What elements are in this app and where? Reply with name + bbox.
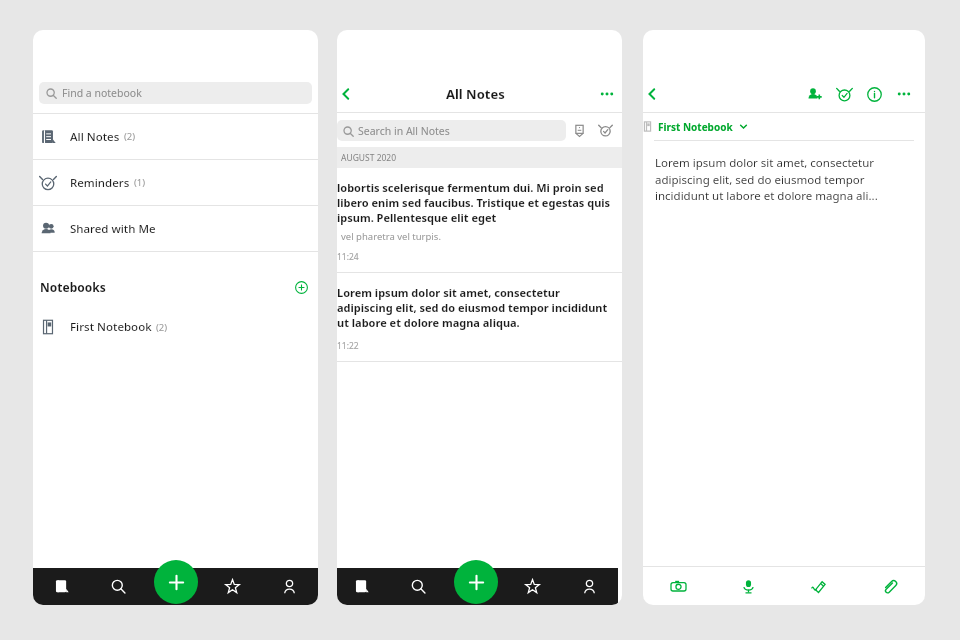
button[interactable]: Reminders [592,117,618,143]
button[interactable]: Find a notebook [39,82,312,104]
button[interactable]: More options [889,79,919,109]
staticText: AUGUST 2020 [341,152,397,164]
button[interactable]: Camera [643,567,713,605]
button[interactable]: New note [454,560,498,604]
staticText: Lorem ipsum dolor sit amet, consectetur … [337,285,612,330]
button[interactable]: First Notebook [33,312,318,342]
staticText: First Notebook [658,120,733,134]
button[interactable]: Attach file [854,567,925,605]
button[interactable]: More options [594,76,620,112]
staticText: (2) [124,130,136,143]
button[interactable]: Shortcuts [504,568,561,605]
button[interactable]: Shortcuts [204,568,261,605]
staticText: lobortis scelerisque fermentum dui. Mi p… [337,180,612,225]
staticText: Shared with Me [70,221,156,237]
staticText: All Notes [70,129,120,145]
staticText: 11:22 [337,340,359,352]
staticText: Find a notebook [62,86,142,100]
button[interactable]: Audio [713,567,783,605]
button[interactable]: First Notebook [643,113,925,140]
button[interactable]: Share [799,79,829,109]
button[interactable]: New notebook [291,277,311,297]
button[interactable]: Reminders [33,160,318,205]
button[interactable]: Search in All Notes [337,120,566,141]
staticText: Reminders [70,175,130,191]
button[interactable]: Back [643,76,665,112]
button[interactable]: Handwriting [783,567,854,605]
button[interactable]: Search [390,568,447,605]
button[interactable]: Notes [337,568,390,605]
button[interactable]: Shared with Me [33,206,318,251]
button[interactable]: Set reminder [829,79,859,109]
button[interactable]: Tags [566,117,592,143]
staticText: First Notebook [70,319,152,335]
button[interactable]: Search [90,568,147,605]
staticText: Notebooks [40,279,106,295]
button[interactable]: Notes [33,568,90,605]
button[interactable]: Lorem ipsum dolor sit amet, consectetur … [337,273,622,361]
button[interactable]: Account [561,568,618,605]
button[interactable]: All Notes [33,114,318,159]
button[interactable]: Back [337,76,359,112]
staticText: All Notes [446,85,505,103]
button[interactable]: New note [154,560,198,604]
staticText: vel pharetra vel turpis. [341,230,441,243]
staticText: Search in All Notes [358,124,450,138]
staticText: 11:24 [337,251,359,263]
staticText: Lorem ipsum dolor sit amet, consectetur … [655,155,913,203]
staticText: (2) [156,321,168,334]
staticText: (1) [134,176,146,189]
button[interactable]: lobortis scelerisque fermentum dui. Mi p… [337,168,622,272]
button[interactable]: Note info [859,79,889,109]
button[interactable]: Account [261,568,318,605]
